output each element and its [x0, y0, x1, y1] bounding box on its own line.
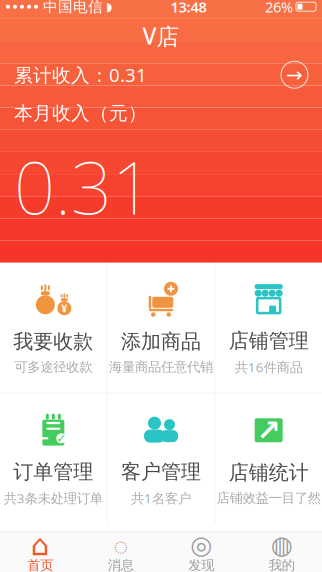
staticText: 本月收入（元） — [14, 102, 147, 125]
button[interactable]: ¥ — [0, 263, 107, 393]
staticText: → — [286, 63, 303, 86]
button[interactable]: ◎ — [161, 532, 241, 572]
button[interactable]: ◍ — [241, 532, 322, 572]
staticText: ⌂ — [31, 528, 50, 562]
staticText: ↗ — [256, 414, 281, 447]
staticText: 0.31 — [14, 139, 153, 234]
staticText: 26% — [265, 0, 293, 16]
staticText: 消息 — [108, 557, 134, 572]
staticText: ◍ — [271, 531, 293, 559]
button[interactable]: ↗ — [215, 394, 322, 524]
button[interactable]: 客户管理 — [108, 394, 214, 524]
staticText: 店铺统计 — [229, 460, 309, 485]
button[interactable]: ◌ — [80, 532, 161, 572]
button[interactable]: 查看收入明细 — [275, 55, 314, 94]
staticText: ¥ — [61, 301, 67, 315]
staticText: ◎ — [190, 531, 212, 559]
staticText: 发现 — [188, 557, 214, 572]
staticText: ◌ — [113, 528, 128, 562]
staticText: 13:48 — [170, 0, 206, 16]
staticText: 添加商品 — [121, 329, 201, 354]
button[interactable]: ⌂ — [0, 532, 80, 572]
button[interactable]: 添加商品 — [108, 263, 214, 393]
staticText: 共1名客户 — [131, 489, 191, 507]
button[interactable]: ✓ — [0, 394, 107, 524]
staticText: 我的 — [269, 557, 295, 572]
staticText: 海量商品任意代销 — [109, 359, 213, 375]
staticText: 我要收款 — [13, 329, 93, 354]
staticText: ◗ — [106, 0, 112, 13]
staticText: 店铺管理 — [229, 329, 309, 353]
staticText: 累计收入：0.31 — [14, 62, 147, 87]
staticText: ✓ — [56, 431, 66, 445]
staticText: V店 — [142, 21, 179, 51]
staticText: 共16件商品 — [235, 358, 303, 376]
button[interactable]: 店铺管理 — [215, 263, 322, 393]
staticText: 共3条未处理订单 — [4, 489, 103, 507]
staticText: 中国电信 — [43, 0, 103, 16]
staticText: 首页 — [27, 557, 53, 572]
staticText: 客户管理 — [121, 460, 201, 484]
staticText: 订单管理 — [13, 460, 93, 484]
staticText: 店铺效益一目了然 — [217, 490, 321, 506]
staticText: 可多途径收款 — [14, 359, 92, 375]
